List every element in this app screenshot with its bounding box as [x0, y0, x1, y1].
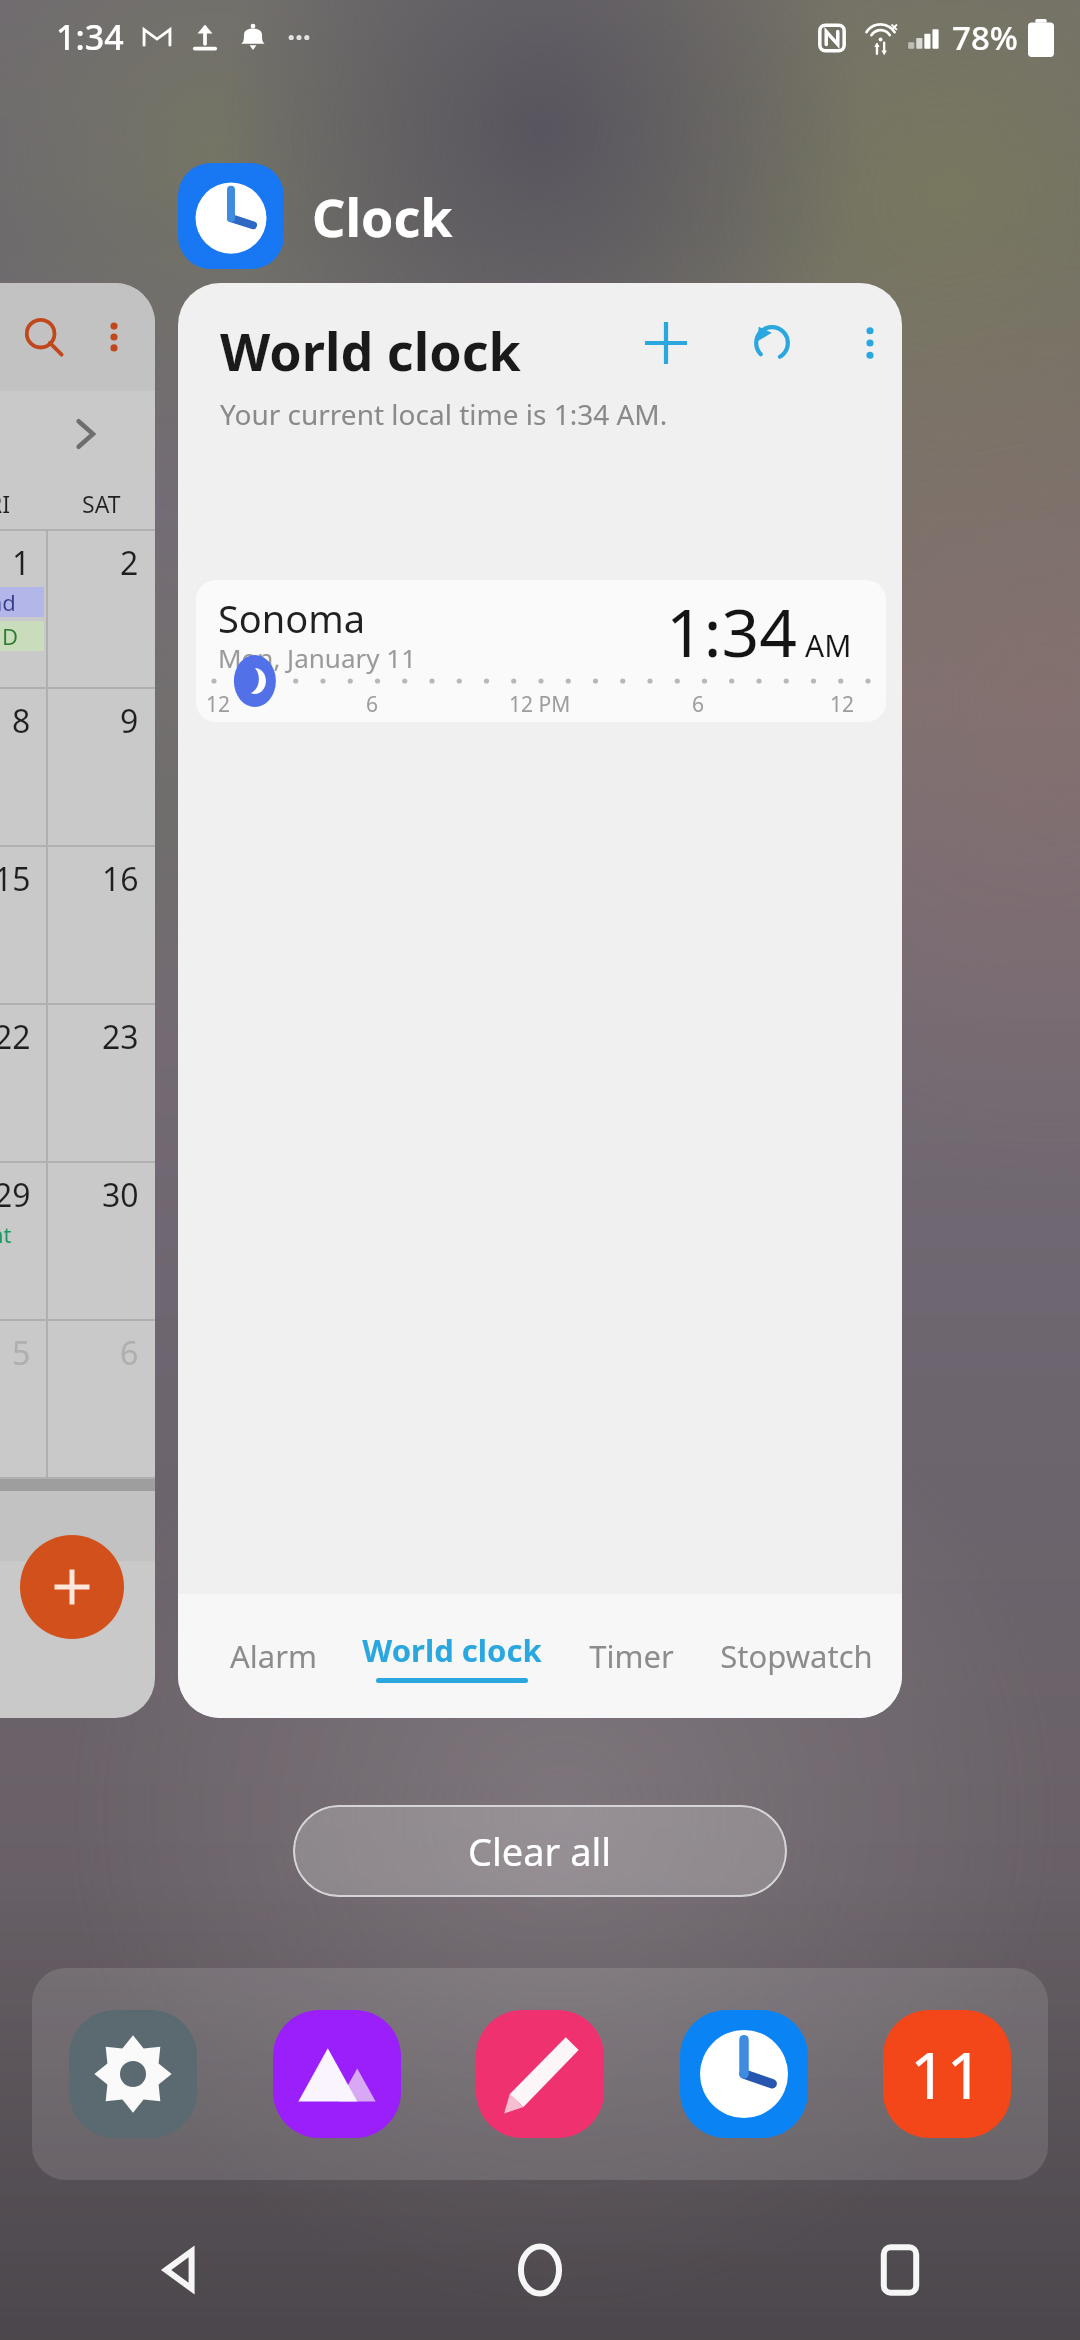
button[interactable]: Timer — [554, 1594, 708, 1718]
staticText: 16 — [102, 857, 139, 901]
button[interactable]: Clock — [669, 1999, 819, 2149]
button[interactable]: Stopwatch — [708, 1594, 884, 1718]
staticText: 9 — [120, 699, 139, 743]
staticText: Alarm — [230, 1635, 317, 1677]
staticText: 8 — [12, 699, 31, 743]
staticText: 12 — [206, 690, 231, 719]
staticText: 22 — [0, 1015, 31, 1059]
staticText: 23 — [102, 1015, 139, 1059]
staticText: ear's D — [0, 621, 19, 651]
button[interactable]: Add city — [624, 301, 708, 385]
staticText: 6 — [120, 1331, 139, 1375]
button[interactable]: Search — [9, 302, 79, 372]
staticText: World clock — [362, 1629, 542, 1671]
staticText: weight — [0, 1219, 12, 1249]
staticText: 1:34 — [666, 586, 797, 676]
button[interactable]: Recents — [720, 2200, 1080, 2340]
button[interactable]: Settings — [58, 1999, 208, 2149]
button[interactable]: World clock — [178, 283, 902, 1718]
button[interactable]: Add event — [20, 1535, 124, 1639]
button[interactable]: Reset — [730, 301, 814, 385]
staticText: 2 — [120, 541, 139, 585]
staticText: SAT — [82, 488, 121, 519]
button[interactable]: Notes — [465, 1999, 615, 2149]
staticText: 1 — [12, 541, 31, 585]
staticText: World clock — [220, 315, 521, 386]
button[interactable]: Calendar — [872, 1999, 1022, 2149]
button[interactable]: Back — [0, 2200, 360, 2340]
staticText: birthd — [0, 587, 16, 617]
staticText: Mon, January 11 — [218, 640, 417, 675]
button[interactable]: Gallery — [262, 1999, 412, 2149]
staticText: Stopwatch — [720, 1635, 873, 1677]
button[interactable]: Sonoma — [196, 580, 886, 722]
staticText: 15 — [0, 857, 31, 901]
button[interactable]: Home — [360, 2200, 720, 2340]
staticText: FRI — [0, 488, 11, 519]
staticText: 6 — [366, 690, 379, 719]
staticText: 12 — [830, 690, 855, 719]
staticText: Clock — [312, 181, 453, 252]
staticText: 1:34 — [56, 14, 124, 60]
button[interactable]: More options — [828, 301, 902, 385]
staticText: 78% — [952, 15, 1018, 60]
staticText: Clear all — [468, 1825, 612, 1877]
staticText: Sonoma — [218, 592, 366, 644]
staticText: 6 — [692, 690, 705, 719]
staticText: Timer — [589, 1635, 674, 1677]
button[interactable]: More options — [79, 302, 149, 372]
button[interactable]: World clock — [350, 1594, 554, 1718]
button[interactable]: Clear all — [293, 1805, 787, 1897]
staticText: 29 — [0, 1173, 31, 1217]
staticText: Your current local time is 1:34 AM. — [220, 395, 668, 433]
staticText: AM — [805, 625, 852, 666]
staticText: 30 — [102, 1173, 139, 1217]
button[interactable]: Alarm — [196, 1594, 350, 1718]
staticText: 11 — [910, 2031, 984, 2118]
button[interactable]: Next month — [52, 401, 118, 467]
button[interactable]: Search — [0, 283, 155, 1718]
staticText: 5 — [12, 1331, 31, 1375]
staticText: 12 PM — [509, 690, 571, 719]
